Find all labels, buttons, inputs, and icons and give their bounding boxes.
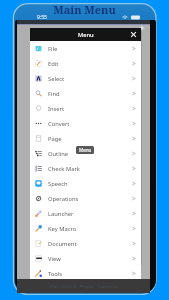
button[interactable]: Select — [30, 71, 141, 86]
staticText: Find — [48, 90, 60, 98]
staticText: Edit — [48, 60, 59, 68]
button[interactable]: Document — [30, 236, 141, 251]
staticText: Check Mark — [48, 165, 80, 173]
button[interactable]: Speech — [30, 176, 141, 191]
staticText: Tools — [48, 270, 63, 278]
staticText: Outline — [48, 150, 69, 158]
button[interactable]: Find — [30, 86, 141, 101]
button[interactable]: Outline — [30, 146, 141, 161]
staticText: Speech — [48, 180, 68, 188]
staticText: Convert — [48, 120, 70, 128]
staticText: Main Menu — [53, 2, 116, 17]
button[interactable]: Tools — [30, 266, 141, 281]
staticText: Insert — [48, 105, 65, 113]
button[interactable]: Convert — [30, 116, 141, 131]
staticText: Menu — [79, 147, 92, 153]
button[interactable]: Edit — [30, 56, 141, 71]
staticText: File — [48, 45, 58, 53]
staticText: vflat_init(z).txt Regular Expression — [49, 284, 119, 290]
staticText: Menu — [78, 31, 94, 39]
button[interactable]: Page — [30, 131, 141, 146]
button[interactable]: Menu — [30, 28, 141, 41]
staticText: View — [48, 255, 61, 263]
button[interactable]: File — [30, 41, 141, 56]
staticText: Key Macro — [48, 225, 77, 233]
button[interactable]: Key Macro — [30, 221, 141, 236]
button[interactable]: Close — [130, 31, 137, 38]
button[interactable]: Insert — [30, 101, 141, 116]
staticText: Launcher — [48, 210, 74, 218]
staticText: Document — [48, 240, 77, 248]
button[interactable]: Check Mark — [30, 161, 141, 176]
button[interactable]: Launcher — [30, 206, 141, 221]
staticText: Page — [48, 135, 62, 143]
staticText: Select — [48, 75, 65, 83]
staticText: 9:55 — [37, 14, 47, 21]
staticText: Operations — [48, 195, 79, 203]
button[interactable]: View — [30, 251, 141, 266]
button[interactable]: Operations — [30, 191, 141, 206]
